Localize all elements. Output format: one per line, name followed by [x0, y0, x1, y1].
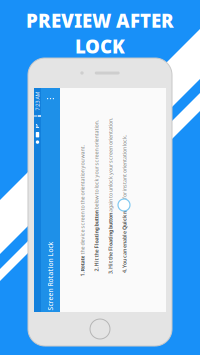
staticText: Floating button	[44, 192, 82, 200]
staticText: LOCK	[75, 34, 125, 59]
staticText: 4. You can enable	[55, 200, 98, 208]
staticText: 3. Hit the	[32, 192, 55, 200]
staticText: Floating button	[55, 192, 93, 200]
staticText: the device screen to the orientation you…	[38, 207, 148, 215]
staticText: 2. Hit the	[21, 192, 44, 200]
staticText: again to unlock your screen orientation.	[93, 192, 188, 200]
staticText: Rotate	[22, 207, 38, 215]
staticText: PREVIEW AFTER	[26, 8, 174, 33]
staticText: below to lock your screen orientation.	[82, 192, 172, 200]
staticText: Quick mode	[98, 200, 128, 208]
staticText: Screen Rotation Lock	[16, 272, 85, 280]
staticText: 7:23 AM	[28, 97, 47, 105]
staticText: for instant orientation lock.	[128, 200, 193, 208]
